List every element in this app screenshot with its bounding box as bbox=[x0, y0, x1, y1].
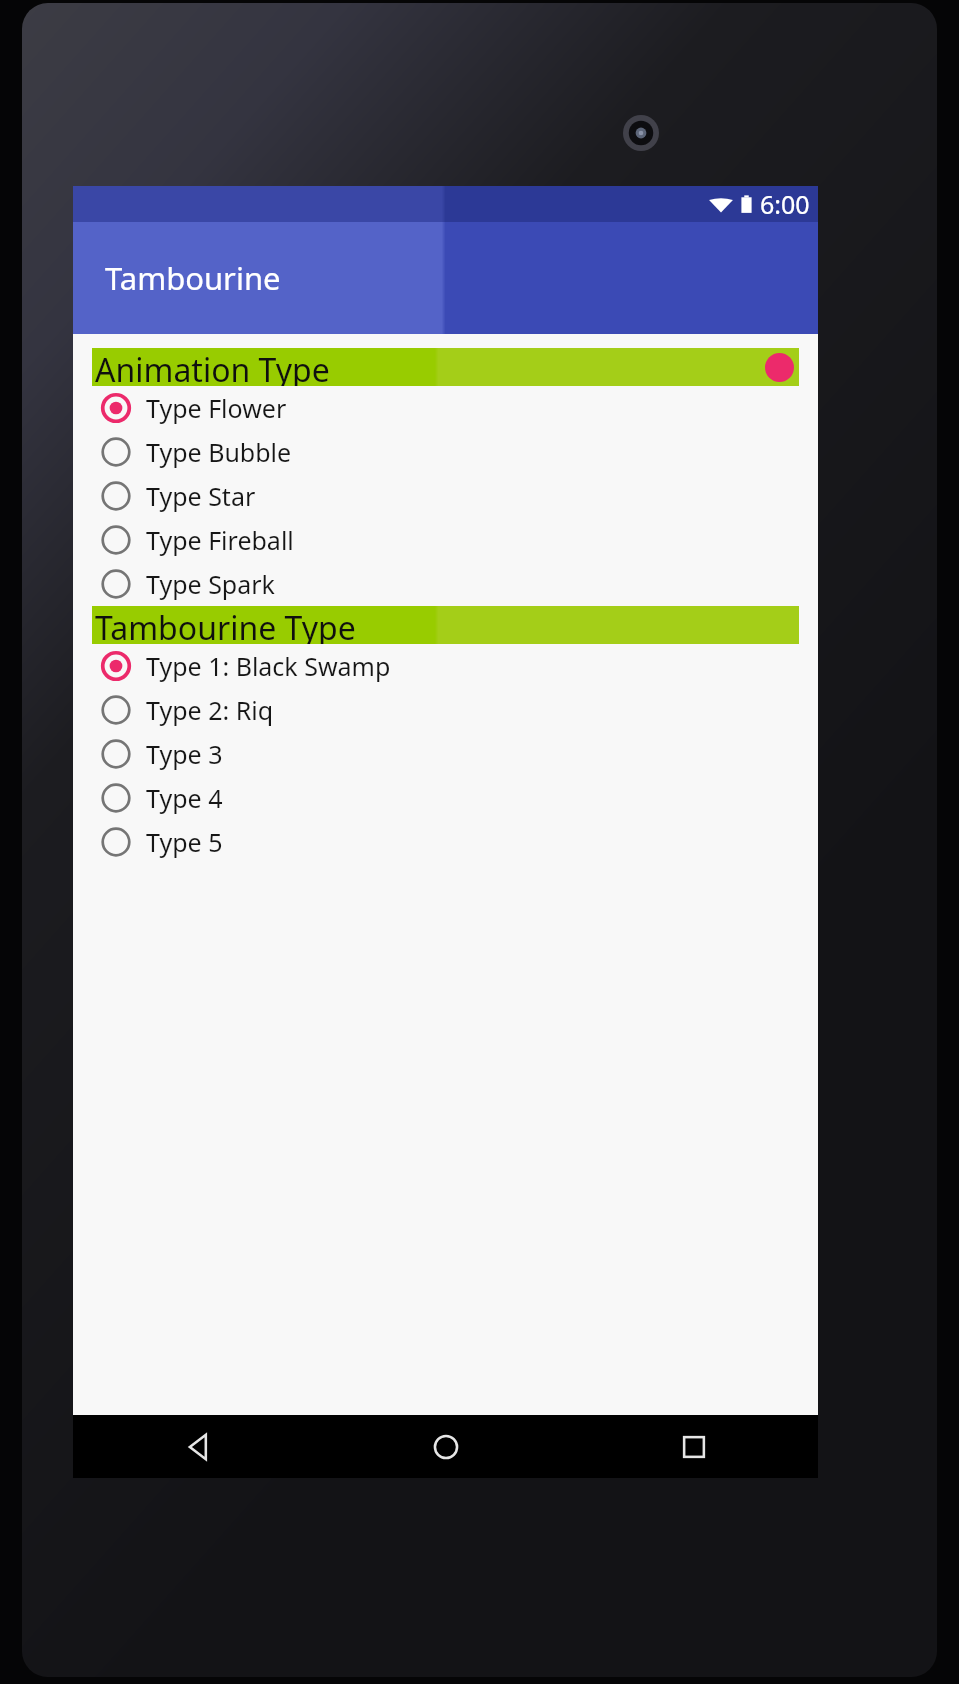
staticText: 6:00 bbox=[760, 187, 810, 221]
button[interactable]: Type 3 bbox=[73, 732, 818, 776]
staticText: Type 3 bbox=[146, 737, 223, 771]
staticText: Type Flower bbox=[146, 391, 287, 425]
button[interactable]: Type 5 bbox=[73, 820, 818, 864]
staticText: Type 4 bbox=[146, 781, 223, 815]
staticText: Tambourine bbox=[105, 257, 281, 299]
staticText: Type 1: Black Swamp bbox=[146, 649, 391, 683]
button[interactable]: Type Flower bbox=[73, 386, 818, 430]
staticText: Type 5 bbox=[146, 825, 223, 859]
button[interactable]: Type Fireball bbox=[73, 518, 818, 562]
button[interactable]: Type 1: Black Swamp bbox=[73, 644, 818, 688]
button[interactable]: Type Star bbox=[73, 474, 818, 518]
staticText: Animation Type bbox=[95, 348, 330, 386]
button[interactable]: Type 2: Riq bbox=[73, 688, 818, 732]
staticText: Type Bubble bbox=[146, 435, 292, 469]
staticText: Type Spark bbox=[146, 567, 275, 601]
button[interactable]: Type Spark bbox=[73, 562, 818, 606]
staticText: Type Fireball bbox=[146, 523, 294, 557]
button[interactable]: Type 4 bbox=[73, 776, 818, 820]
button[interactable]: Home bbox=[322, 1415, 570, 1478]
staticText: Type 2: Riq bbox=[146, 693, 274, 727]
button[interactable]: Type Bubble bbox=[73, 430, 818, 474]
staticText: Type Star bbox=[146, 479, 256, 513]
button[interactable]: Recent apps bbox=[570, 1415, 818, 1478]
button[interactable]: Back bbox=[73, 1415, 322, 1478]
staticText: Tambourine Type bbox=[95, 606, 356, 644]
